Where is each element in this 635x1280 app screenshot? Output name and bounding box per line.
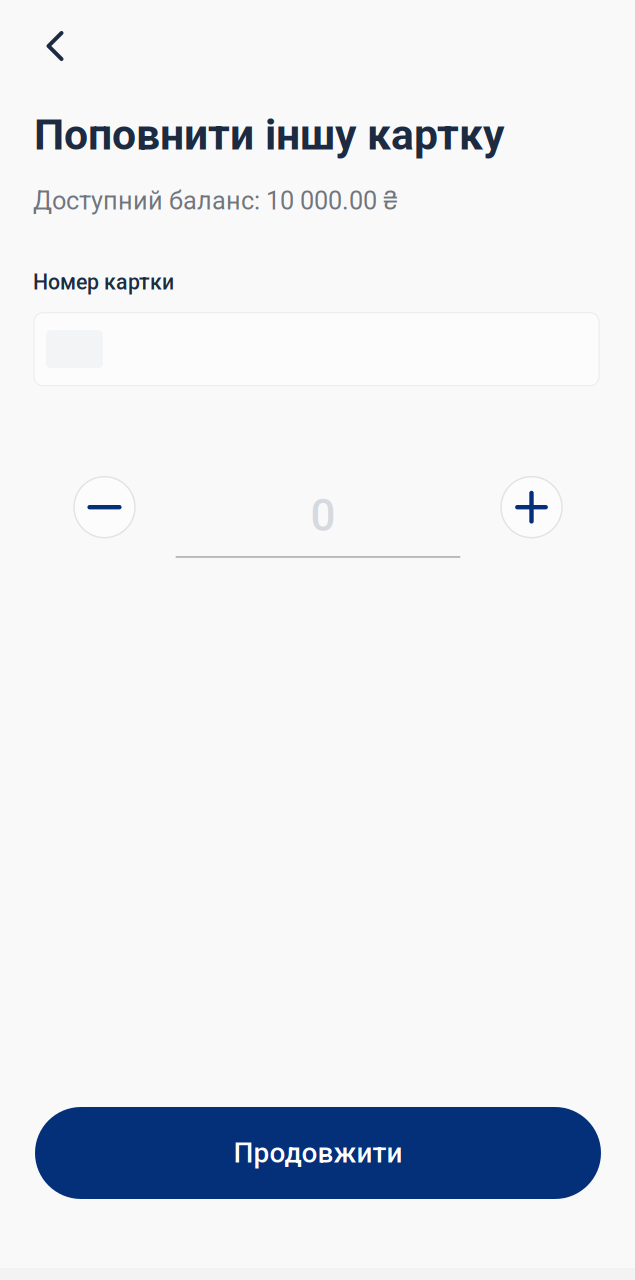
staticText: Продовжити [233,1137,402,1169]
staticText: Поповнити іншу картку [34,110,504,160]
staticText: Номер картки [33,270,174,295]
button[interactable]: Back [29,20,81,72]
button[interactable]: Продовжити [35,1107,601,1199]
staticText: Доступний баланс: 10 000.00 ₴ [33,186,398,216]
button[interactable]: Decrease amount [74,477,135,538]
button[interactable]: Increase amount [501,477,562,538]
staticText: 0 [310,490,335,541]
